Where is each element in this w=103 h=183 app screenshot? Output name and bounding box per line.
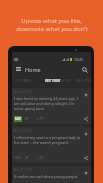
- button[interactable]: ALL TIME: [59, 79, 73, 83]
- staticText: 87: [25, 117, 29, 121]
- staticText: am still alive and doing allright. I'm: [14, 101, 75, 106]
- staticText: NEW: [25, 79, 31, 83]
- button[interactable]: Favourite: [82, 130, 89, 137]
- button[interactable]: FAVOURITES: [75, 79, 93, 83]
- staticText: I offered my seat to a pregnant lady in: [14, 135, 81, 140]
- button[interactable]: Menu: [14, 65, 22, 73]
- staticText: 41: [25, 156, 29, 160]
- button[interactable]: Share: [82, 115, 89, 122]
- staticText: POPULAR: [15, 79, 27, 83]
- button[interactable]: BEST TODAY: [44, 79, 62, 83]
- button[interactable]: Nov 21, 2016: [12, 88, 91, 124]
- staticText: 640: [15, 117, 21, 121]
- staticText: the train ...she wasn't pregnant.: [14, 140, 69, 145]
- staticText: I was hired as missing 24 years ago, I: [14, 96, 79, 101]
- button[interactable]: Nov 21, 2016: [12, 166, 91, 183]
- button[interactable]: Search: [80, 65, 89, 74]
- button[interactable]: Share: [82, 154, 89, 161]
- staticText: downvote what you don't: [16, 25, 88, 33]
- staticText: + 17: [37, 117, 44, 121]
- staticText: Upvote what you like,: [21, 17, 82, 25]
- staticText: Home: [25, 66, 41, 73]
- button[interactable]: NEW: [24, 79, 32, 83]
- staticText: 526: [15, 156, 21, 160]
- button[interactable]: Nov 21, 2016: [12, 127, 91, 163]
- staticText: + 10: [37, 156, 44, 160]
- staticText: Nov 21, 2016: [14, 168, 33, 172]
- staticText: Nov 21, 2016: [14, 90, 33, 94]
- staticText: It makes me sad when young people: [14, 174, 78, 179]
- button[interactable]: POPULAR: [14, 79, 28, 83]
- staticText: 12:31: [74, 57, 83, 62]
- staticText: FAVOURITES: [76, 79, 92, 83]
- button[interactable]: Favourite: [82, 91, 89, 98]
- staticText: ALL TIME: [60, 79, 72, 83]
- staticText: Nov 21, 2016: [14, 129, 33, 133]
- staticText: BEST TODAY: [45, 79, 61, 83]
- staticText: never going back.: [14, 106, 45, 111]
- button[interactable]: Favourite: [82, 169, 89, 176]
